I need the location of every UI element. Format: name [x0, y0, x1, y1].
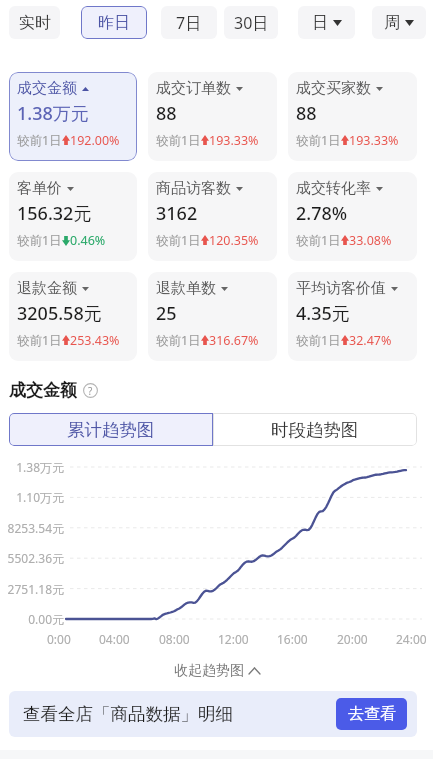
button[interactable]: 收起趋势图 — [0, 662, 433, 680]
staticText: 7日 — [176, 12, 202, 34]
staticText: 较前1日 — [296, 332, 341, 349]
staticText: 316.67% — [209, 332, 259, 349]
staticText: 实时 — [19, 13, 51, 33]
staticText: 3205.58元 — [17, 301, 102, 326]
button[interactable]: 去查看 — [336, 698, 407, 730]
staticText: 2.78% — [296, 201, 348, 226]
staticText: 累计趋势图 — [67, 419, 155, 441]
staticText: 时段趋势图 — [271, 419, 359, 441]
staticText: 较前1日 — [17, 132, 62, 149]
staticText: 120.35% — [209, 232, 259, 249]
staticText: 平均访客价值 — [296, 279, 386, 298]
staticText: 收起趋势图 — [174, 662, 244, 680]
staticText: 16:00 — [277, 631, 308, 647]
button[interactable]: 查看全店「商品数据」明细 — [9, 691, 417, 737]
staticText: 退款单数 — [156, 279, 216, 298]
staticText: 2751.18元 — [0, 581, 64, 597]
staticText: 253.43% — [70, 332, 120, 349]
button[interactable]: 说明 — [83, 383, 98, 398]
staticText: 193.33% — [209, 132, 259, 149]
staticText: 0.46% — [70, 232, 106, 249]
button[interactable]: 成交金额 — [9, 72, 137, 161]
staticText: 8253.54元 — [0, 520, 64, 536]
button[interactable]: 7日 — [161, 6, 217, 39]
staticText: 0:00 — [47, 631, 71, 647]
staticText: 5502.36元 — [0, 550, 64, 566]
staticText: 较前1日 — [296, 132, 341, 149]
staticText: 1.38万元 — [17, 101, 89, 126]
button[interactable]: 成交买家数 — [288, 72, 417, 161]
staticText: 较前1日 — [17, 232, 62, 249]
staticText: 去查看 — [348, 704, 396, 724]
staticText: 04:00 — [99, 631, 130, 647]
staticText: 12:00 — [218, 631, 249, 647]
button[interactable]: 周 — [372, 6, 426, 39]
staticText: 30日 — [234, 12, 269, 34]
button[interactable]: 成交订单数 — [148, 72, 277, 161]
staticText: ? — [88, 384, 93, 398]
button[interactable]: 累计趋势图 — [9, 413, 213, 446]
staticText: 成交金额 — [17, 79, 77, 98]
staticText: 08:00 — [159, 631, 190, 647]
staticText: 成交买家数 — [296, 79, 371, 98]
staticText: 0.00元 — [0, 611, 64, 627]
staticText: 商品访客数 — [156, 179, 231, 198]
staticText: 昨日 — [98, 13, 130, 33]
button[interactable]: 日 — [298, 6, 355, 39]
staticText: 较前1日 — [156, 332, 201, 349]
staticText: 1.38万元 — [0, 459, 64, 475]
staticText: 较前1日 — [156, 132, 201, 149]
staticText: 88 — [156, 101, 177, 126]
staticText: 1.10万元 — [0, 489, 64, 505]
button[interactable]: 客单价 — [9, 172, 137, 261]
button[interactable]: 成交转化率 — [288, 172, 417, 261]
staticText: 周 — [384, 13, 400, 33]
staticText: 较前1日 — [296, 232, 341, 249]
staticText: 25 — [156, 301, 177, 326]
staticText: 4.35元 — [296, 301, 350, 326]
staticText: 成交金额 — [9, 380, 77, 401]
button[interactable]: 30日 — [224, 6, 278, 39]
button[interactable]: 时段趋势图 — [213, 413, 417, 446]
button[interactable]: 退款金额 — [9, 272, 137, 361]
staticText: 193.33% — [349, 132, 399, 149]
staticText: 24:00 — [396, 631, 427, 647]
staticText: 20:00 — [337, 631, 368, 647]
staticText: 日 — [312, 13, 328, 33]
staticText: 成交订单数 — [156, 79, 231, 98]
button[interactable]: 平均访客价值 — [288, 272, 417, 361]
staticText: 88 — [296, 101, 317, 126]
staticText: 成交转化率 — [296, 179, 371, 198]
button[interactable]: 实时 — [9, 6, 60, 39]
staticText: 较前1日 — [17, 332, 62, 349]
staticText: 3162 — [156, 201, 198, 226]
staticText: 客单价 — [17, 179, 62, 198]
button[interactable]: 退款单数 — [148, 272, 277, 361]
staticText: 192.00% — [70, 132, 120, 149]
staticText: 156.32元 — [17, 201, 92, 226]
staticText: 查看全店「商品数据」明细 — [23, 703, 233, 725]
button[interactable]: 昨日 — [81, 6, 147, 39]
staticText: 退款金额 — [17, 279, 77, 298]
staticText: 33.08% — [349, 232, 392, 249]
staticText: 32.47% — [349, 332, 392, 349]
staticText: 较前1日 — [156, 232, 201, 249]
button[interactable]: 商品访客数 — [148, 172, 277, 261]
